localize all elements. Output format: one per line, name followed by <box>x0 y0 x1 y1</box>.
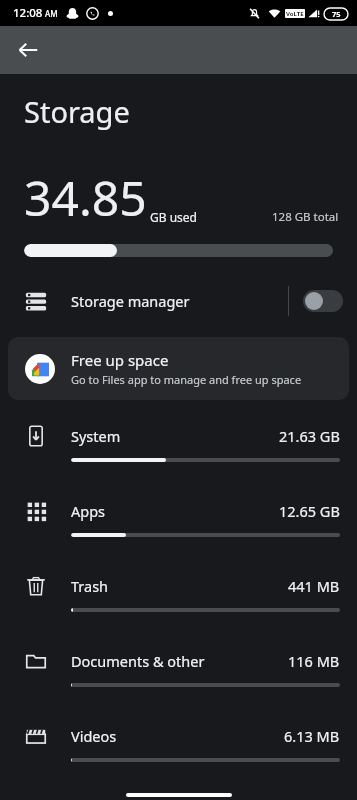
staticText: 21.63 GB <box>279 426 340 446</box>
button[interactable]: System <box>0 414 357 489</box>
button[interactable]: Storage manager <box>0 279 357 323</box>
staticText: Storage manager <box>71 291 190 311</box>
staticText: Go to Files app to manage and free up sp… <box>71 372 302 387</box>
staticText: Apps <box>71 501 106 521</box>
button[interactable]: Videos <box>0 714 357 789</box>
button[interactable]: Trash <box>0 564 357 639</box>
staticText: Storage <box>24 92 130 131</box>
staticText: AM <box>45 8 58 19</box>
staticText: VoLTE <box>286 10 304 18</box>
button[interactable]: Back <box>8 30 48 70</box>
staticText: Free up space <box>71 350 169 370</box>
staticText: 75 <box>332 9 341 19</box>
staticText: 128 GB total <box>272 209 339 225</box>
button[interactable]: Documents & other <box>0 639 357 714</box>
staticText: Videos <box>71 726 117 746</box>
staticText: 441 MB <box>288 576 340 596</box>
button[interactable]: Free up space <box>8 337 349 400</box>
staticText: 34.85 <box>24 165 147 230</box>
staticText: GB used <box>150 209 197 225</box>
staticText: 6.13 MB <box>284 726 340 746</box>
button[interactable]: Storage manager toggle <box>303 290 343 312</box>
staticText: Trash <box>71 576 109 596</box>
staticText: 12.65 GB <box>279 501 340 521</box>
staticText: 116 MB <box>288 651 340 671</box>
staticText: 12:08 <box>13 5 43 21</box>
staticText: System <box>71 426 121 446</box>
staticText: Documents & other <box>71 651 205 671</box>
button[interactable]: Apps <box>0 489 357 564</box>
